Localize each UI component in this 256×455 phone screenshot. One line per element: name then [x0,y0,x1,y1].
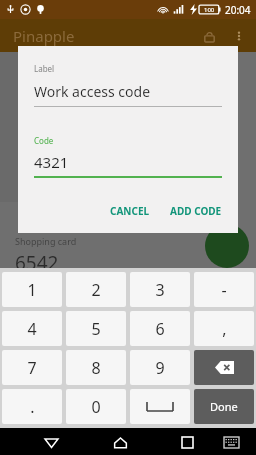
staticText: Code [34,135,54,146]
staticText: 2 [91,279,101,301]
staticText: 6542 [15,250,59,276]
button[interactable]: 6 [130,311,190,346]
button[interactable]: 4 [2,311,62,346]
button[interactable]: Done [194,389,254,424]
button[interactable]: 0 [66,389,126,424]
staticText: 5 [91,318,101,340]
button[interactable]: 3 [130,272,190,307]
button[interactable]: Back [38,429,64,455]
button[interactable]: Switch keyboard [218,429,244,455]
staticText: 9 [155,357,165,379]
staticText: Pinapple [13,26,75,46]
staticText: 6 [155,318,165,340]
button[interactable]: . [2,389,62,424]
button[interactable]: Add [205,224,249,268]
button[interactable]: 2 [66,272,126,307]
button[interactable]: Recents [174,429,200,455]
button[interactable]: CANCEL [102,197,158,225]
button[interactable]: 9 [130,350,190,385]
staticText: ADD CODE [170,204,222,218]
button[interactable] [130,389,190,424]
button[interactable]: 1 [2,272,62,307]
button[interactable]: 7 [2,350,62,385]
staticText: CANCEL [110,204,150,218]
staticText: 4 [27,318,37,340]
staticText: 4321 [34,152,69,172]
staticText: 8 [91,357,101,379]
staticText: , [222,318,227,340]
button[interactable]: - [194,272,254,307]
staticText: 7 [27,357,37,379]
button[interactable]: 8 [66,350,126,385]
staticText: 0 [91,396,101,418]
staticText: Done [210,399,238,414]
staticText: Work access code [34,82,151,101]
button[interactable]: More options [226,23,252,49]
staticText: 100 [204,6,215,14]
staticText: 20:04 [225,3,251,17]
staticText: 3 [155,279,165,301]
button[interactable]: ADD CODE [162,197,230,225]
staticText: Label [34,63,55,74]
button[interactable]: 5 [66,311,126,346]
button[interactable]: Delete [194,350,254,385]
staticText: Shopping card [15,235,77,247]
button[interactable]: Lock [196,23,222,49]
button[interactable]: Home [107,429,133,455]
staticText: - [221,279,227,301]
button[interactable]: , [194,311,254,346]
staticText: . [30,396,35,418]
staticText: 1 [27,279,37,301]
